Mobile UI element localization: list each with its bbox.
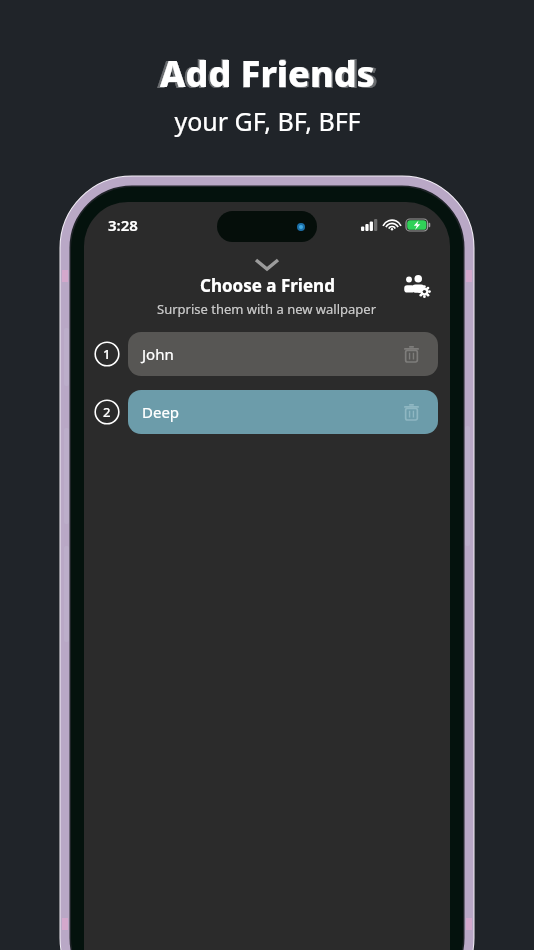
staticText: 2 bbox=[103, 403, 111, 421]
button[interactable]: Delete Deep bbox=[398, 399, 424, 425]
staticText: Add Friends bbox=[157, 48, 378, 98]
button[interactable]: Delete John bbox=[398, 341, 424, 367]
button[interactable]: John bbox=[128, 332, 438, 376]
staticText: Add Friends bbox=[160, 49, 375, 98]
staticText: Deep bbox=[142, 402, 180, 422]
staticText: your GF, BF, BFF bbox=[174, 104, 361, 138]
staticText: Surprise them with a new wallpaper bbox=[157, 300, 377, 318]
button[interactable]: Manage friends settings bbox=[396, 266, 436, 306]
staticText: 1 bbox=[103, 345, 111, 363]
staticText: John bbox=[142, 344, 174, 364]
staticText: Choose a Friend bbox=[200, 274, 335, 297]
staticText: 3:28 bbox=[108, 215, 138, 235]
button[interactable]: Deep bbox=[128, 390, 438, 434]
